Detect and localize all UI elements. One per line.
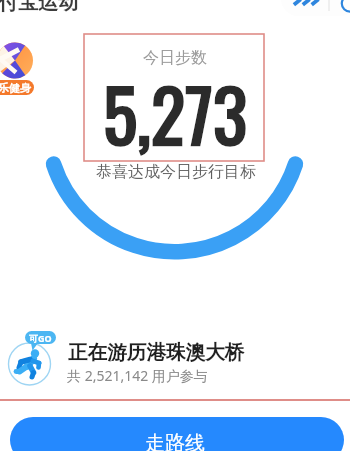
button[interactable]: 走路线 (10, 417, 344, 451)
staticText: 乐健身 (0, 81, 31, 95)
staticText: 5,273 (103, 59, 248, 166)
staticText: 共 2,521,142 用户参与 (67, 366, 208, 385)
button[interactable]: 可GO (0, 325, 350, 389)
button[interactable]: More options (281, 0, 350, 16)
staticText: 可GO (29, 332, 52, 344)
staticText: 正在游历港珠澳大桥 (68, 340, 245, 365)
staticText: 走路线 (145, 431, 205, 451)
staticText: 今日步数 (143, 48, 207, 68)
staticText: 恭喜达成今日步行目标 (1, 162, 350, 182)
staticText: 付宝运动 (0, 0, 78, 15)
